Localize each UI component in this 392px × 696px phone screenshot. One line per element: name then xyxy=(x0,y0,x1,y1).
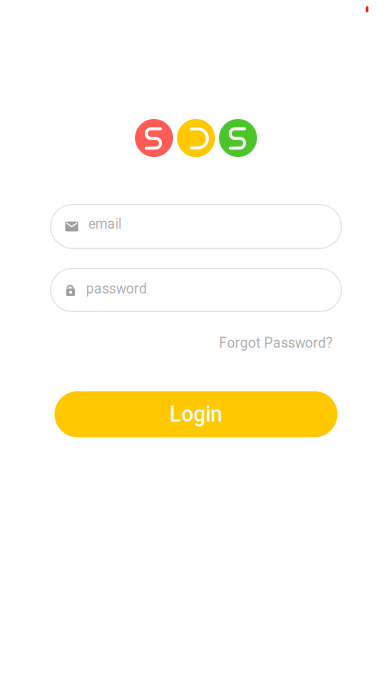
staticText: Forgot Password? xyxy=(219,335,333,351)
staticText: password xyxy=(86,281,147,297)
button[interactable]: Login xyxy=(54,391,337,437)
button[interactable]: Forgot Password? xyxy=(209,328,333,358)
staticText: email xyxy=(88,216,121,232)
staticText: Login xyxy=(169,402,222,427)
